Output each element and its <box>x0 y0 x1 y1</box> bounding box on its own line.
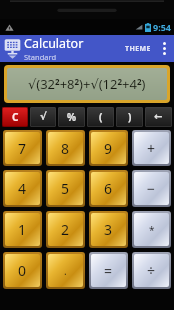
button[interactable]: ( <box>87 107 114 127</box>
button[interactable]: 1 <box>5 213 40 246</box>
button[interactable]: 9 <box>91 132 126 164</box>
button[interactable]: 0 <box>5 254 40 287</box>
button[interactable]: THEME <box>120 38 156 60</box>
staticText: 9 <box>104 139 113 158</box>
staticText: ← <box>154 111 163 123</box>
button[interactable]: 7 <box>5 132 40 164</box>
button[interactable]: 3 <box>91 213 126 246</box>
button[interactable]: 5 <box>48 172 83 205</box>
staticText: 0 <box>18 261 27 280</box>
staticText: Calculator <box>24 35 84 52</box>
staticText: ÷ <box>147 261 156 280</box>
button[interactable]: = <box>91 254 126 287</box>
staticText: 2 <box>61 220 70 239</box>
staticText: √(322+82)+√(122+42) <box>28 75 146 93</box>
staticText: ( <box>99 110 103 124</box>
staticText: √ <box>40 111 47 123</box>
button[interactable]: Backspace <box>145 107 172 127</box>
staticText: C <box>12 110 19 124</box>
staticText: 3 <box>104 220 113 239</box>
staticText: 8 <box>61 139 70 158</box>
button[interactable]: % <box>58 107 85 127</box>
button[interactable]: ÷ <box>134 254 169 287</box>
button[interactable]: * <box>134 213 169 246</box>
staticText: Standard <box>24 52 57 62</box>
button[interactable]: ) <box>116 107 143 127</box>
staticText: THEME <box>125 44 151 54</box>
staticText: * <box>149 223 155 237</box>
button[interactable]: . <box>48 254 83 287</box>
staticText: 1 <box>18 220 27 239</box>
staticText: + <box>147 139 156 158</box>
staticText: = <box>104 261 113 280</box>
button[interactable]: 2 <box>48 213 83 246</box>
staticText: ) <box>128 110 132 124</box>
staticText: . <box>64 264 67 278</box>
staticText: 6 <box>104 179 113 198</box>
button[interactable]: C <box>2 107 28 127</box>
staticText: − <box>147 179 156 198</box>
button[interactable]: √ <box>30 107 56 127</box>
button[interactable]: − <box>134 172 169 205</box>
staticText: 7 <box>18 139 27 158</box>
button[interactable]: Choose calculator mode <box>4 38 21 60</box>
button[interactable]: More options <box>156 35 172 62</box>
button[interactable]: 8 <box>48 132 83 164</box>
button[interactable]: 4 <box>5 172 40 205</box>
button[interactable]: √(322+82)+√(122+42) <box>7 68 167 100</box>
staticText: 9:54 <box>153 21 171 33</box>
staticText: 4 <box>18 179 27 198</box>
staticText: 5 <box>61 179 70 198</box>
button[interactable]: 6 <box>91 172 126 205</box>
staticText: % <box>67 110 77 124</box>
button[interactable]: + <box>134 132 169 164</box>
